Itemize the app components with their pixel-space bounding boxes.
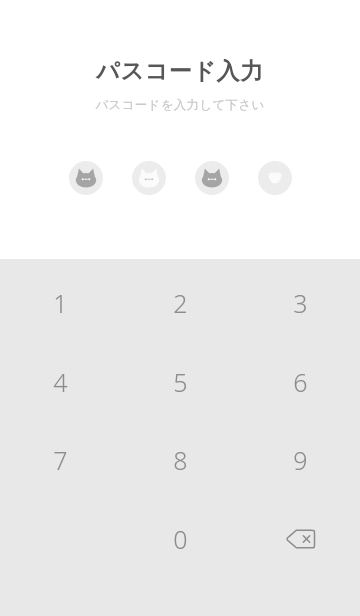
staticText: 6 (293, 365, 308, 399)
staticText: 0 (173, 522, 188, 556)
button[interactable]: 3 (240, 264, 360, 342)
button[interactable]: 4 (0, 343, 120, 421)
button[interactable]: 9 (240, 421, 360, 499)
button[interactable]: 0 (120, 500, 240, 578)
staticText: 4 (53, 365, 68, 399)
button[interactable]: 5 (120, 343, 240, 421)
staticText: パスコードを入力して下さい (95, 97, 265, 113)
button[interactable]: 1 (0, 264, 120, 342)
staticText: 3 (293, 286, 308, 320)
button[interactable]: 6 (240, 343, 360, 421)
staticText: 2 (173, 286, 188, 320)
staticText: 9 (293, 443, 308, 477)
staticText: パスコード入力 (96, 57, 264, 86)
button[interactable]: 7 (0, 421, 120, 499)
staticText: 1 (53, 286, 68, 320)
staticText: 5 (173, 365, 188, 399)
button[interactable]: 8 (120, 421, 240, 499)
button[interactable]: Backspace (240, 500, 360, 578)
staticText: 8 (173, 443, 188, 477)
button[interactable]: 2 (120, 264, 240, 342)
staticText: 7 (53, 443, 68, 477)
